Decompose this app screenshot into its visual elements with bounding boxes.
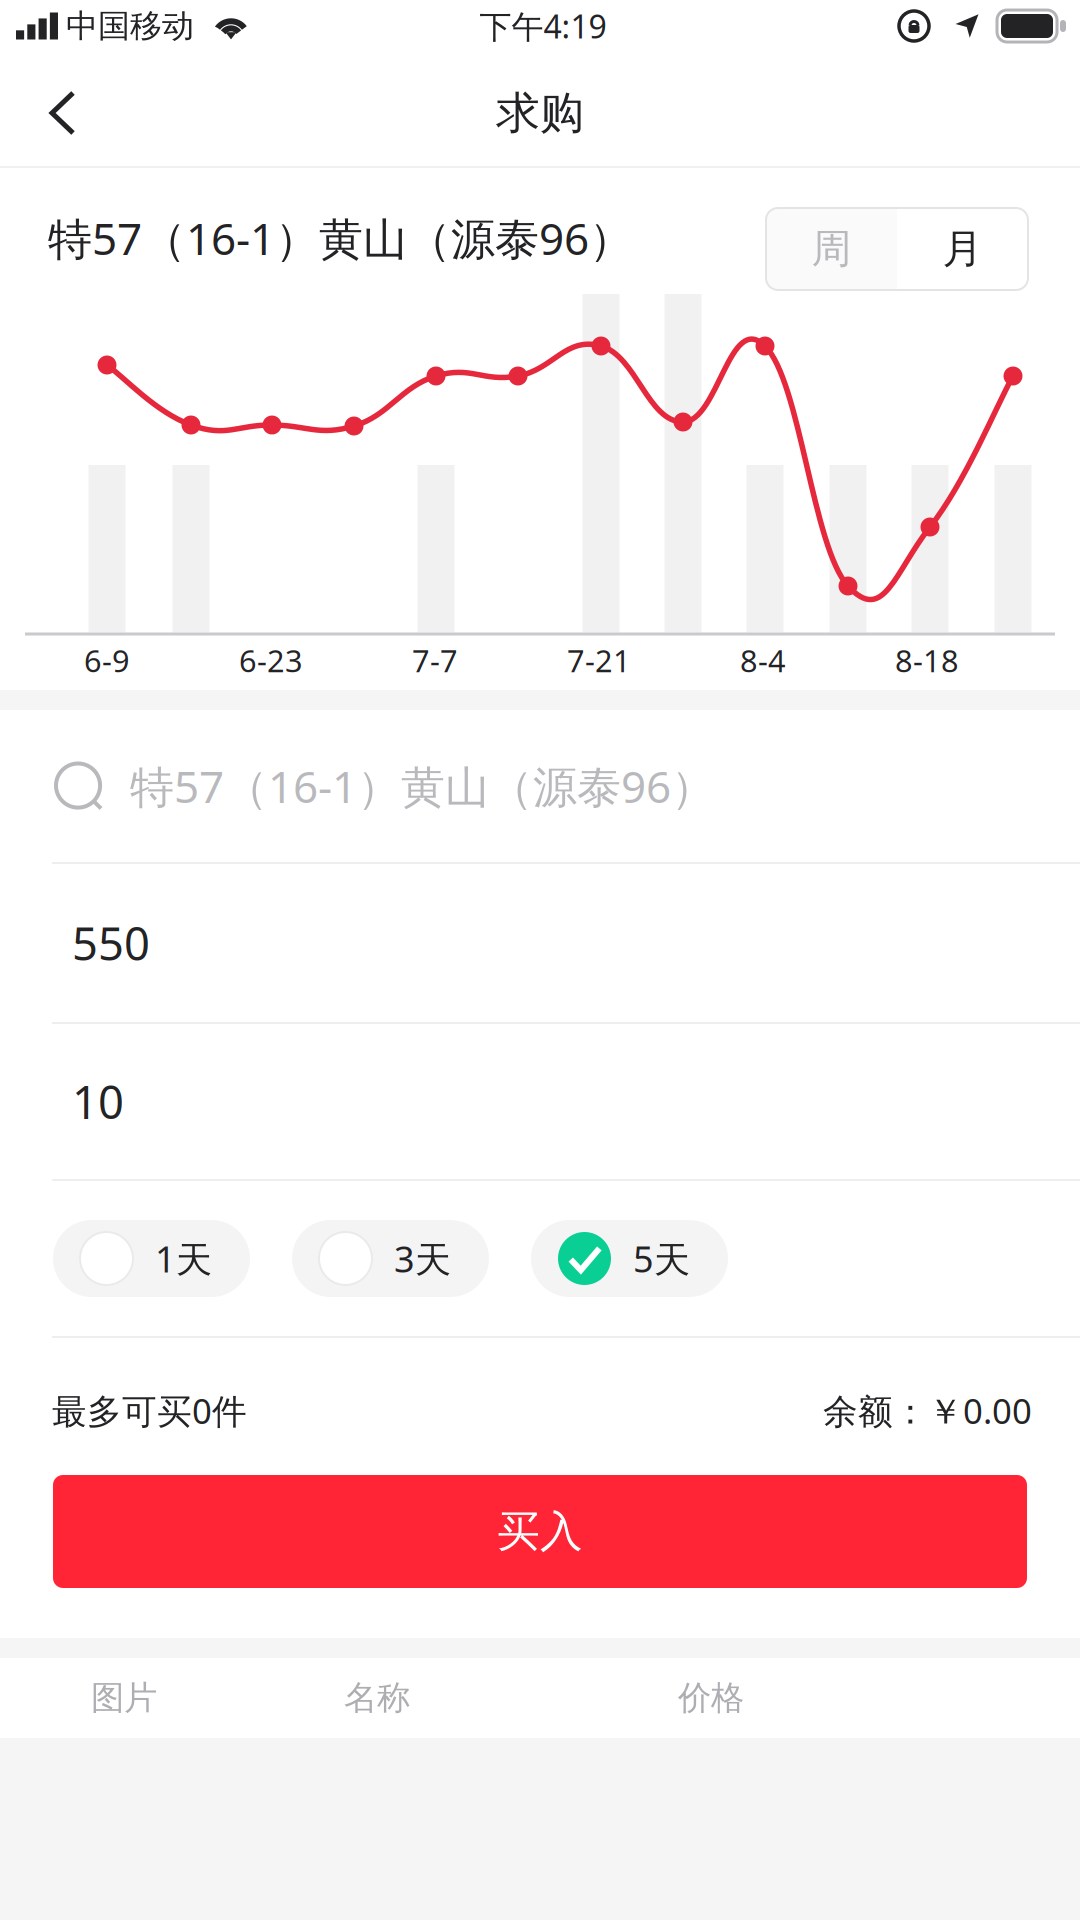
staticText: 余额：￥0.00 (823, 1387, 1032, 1433)
staticText: 买入 (497, 1505, 583, 1558)
button[interactable]: 5天 (531, 1220, 728, 1297)
staticText: 550 (72, 913, 150, 973)
staticText: 7-21 (567, 640, 631, 681)
staticText: 最多可买0件 (52, 1387, 247, 1433)
button[interactable]: 返回 (0, 65, 113, 161)
staticText: 特57（16-1）黄山（源泰96） (48, 209, 633, 267)
button[interactable]: 月 (897, 208, 1028, 290)
staticText: 5天 (633, 1235, 690, 1282)
button[interactable]: 1天 (53, 1220, 250, 1297)
button[interactable]: 周 (766, 208, 897, 290)
staticText: 图片 (91, 1677, 157, 1718)
staticText: 月 (942, 224, 982, 273)
staticText: 6-9 (84, 640, 130, 681)
staticText: 中国移动 (66, 6, 194, 46)
staticText: 价格 (678, 1677, 744, 1718)
button[interactable]: 买入 (53, 1475, 1027, 1588)
staticText: 名称 (344, 1677, 410, 1718)
staticText: 周 (811, 224, 851, 273)
staticText: 10 (72, 1071, 124, 1132)
staticText: 下午4:19 (479, 5, 606, 47)
staticText: 1天 (155, 1235, 212, 1282)
staticText: 特57（16-1）黄山（源泰96） (130, 757, 715, 815)
staticText: 6-23 (239, 640, 303, 681)
button[interactable]: 3天 (292, 1220, 489, 1297)
staticText: 8-18 (895, 640, 959, 681)
staticText: 3天 (394, 1235, 451, 1282)
staticText: 8-4 (740, 640, 786, 681)
staticText: 求购 (496, 86, 584, 140)
staticText: 7-7 (412, 640, 458, 681)
